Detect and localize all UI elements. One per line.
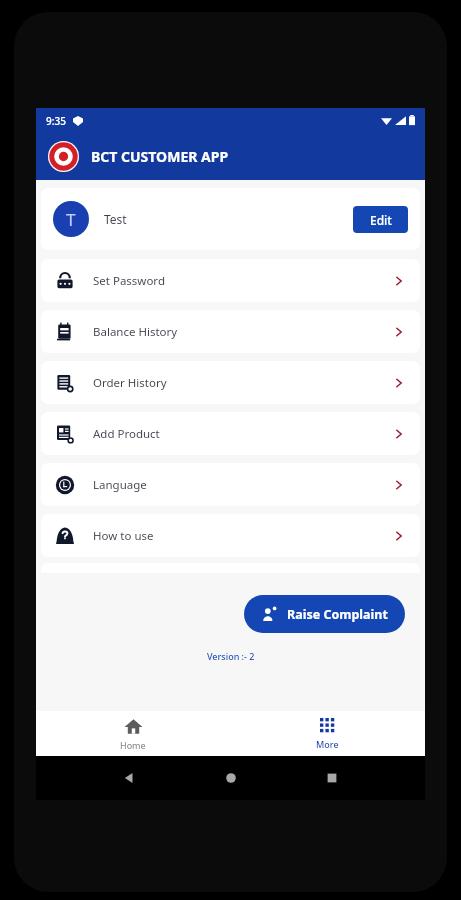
- staticText: Add Product: [93, 426, 160, 442]
- button[interactable]: Set Password: [41, 259, 420, 302]
- staticText: BCT CUSTOMER APP: [91, 147, 229, 166]
- staticText: Home: [120, 739, 146, 751]
- staticText: Version :- 2: [207, 650, 255, 662]
- button[interactable]: Language: [41, 463, 420, 506]
- staticText: Test: [104, 211, 127, 227]
- other: Back: [121, 770, 137, 786]
- staticText: Order History: [93, 375, 167, 391]
- button[interactable]: T: [41, 188, 420, 250]
- staticText: Raise Complaint: [287, 606, 388, 623]
- button[interactable]: Raise Complaint: [244, 595, 405, 633]
- button[interactable]: Add Product: [41, 412, 420, 455]
- staticText: 9:35: [46, 114, 66, 128]
- button[interactable]: Order History: [41, 361, 420, 404]
- button[interactable]: More: [230, 711, 425, 756]
- staticText: T: [66, 208, 76, 231]
- other: Recents: [324, 770, 340, 786]
- staticText: How to use: [93, 528, 154, 544]
- staticText: Language: [93, 477, 147, 493]
- staticText: Set Password: [93, 273, 165, 289]
- button[interactable]: How to use: [41, 514, 420, 557]
- button[interactable]: Balance History: [41, 310, 420, 353]
- button[interactable]: Edit: [353, 206, 408, 233]
- staticText: Edit: [370, 212, 392, 228]
- staticText: More: [316, 738, 339, 750]
- button[interactable]: Home: [36, 711, 230, 756]
- other: Home: [223, 770, 239, 786]
- staticText: Balance History: [93, 324, 178, 340]
